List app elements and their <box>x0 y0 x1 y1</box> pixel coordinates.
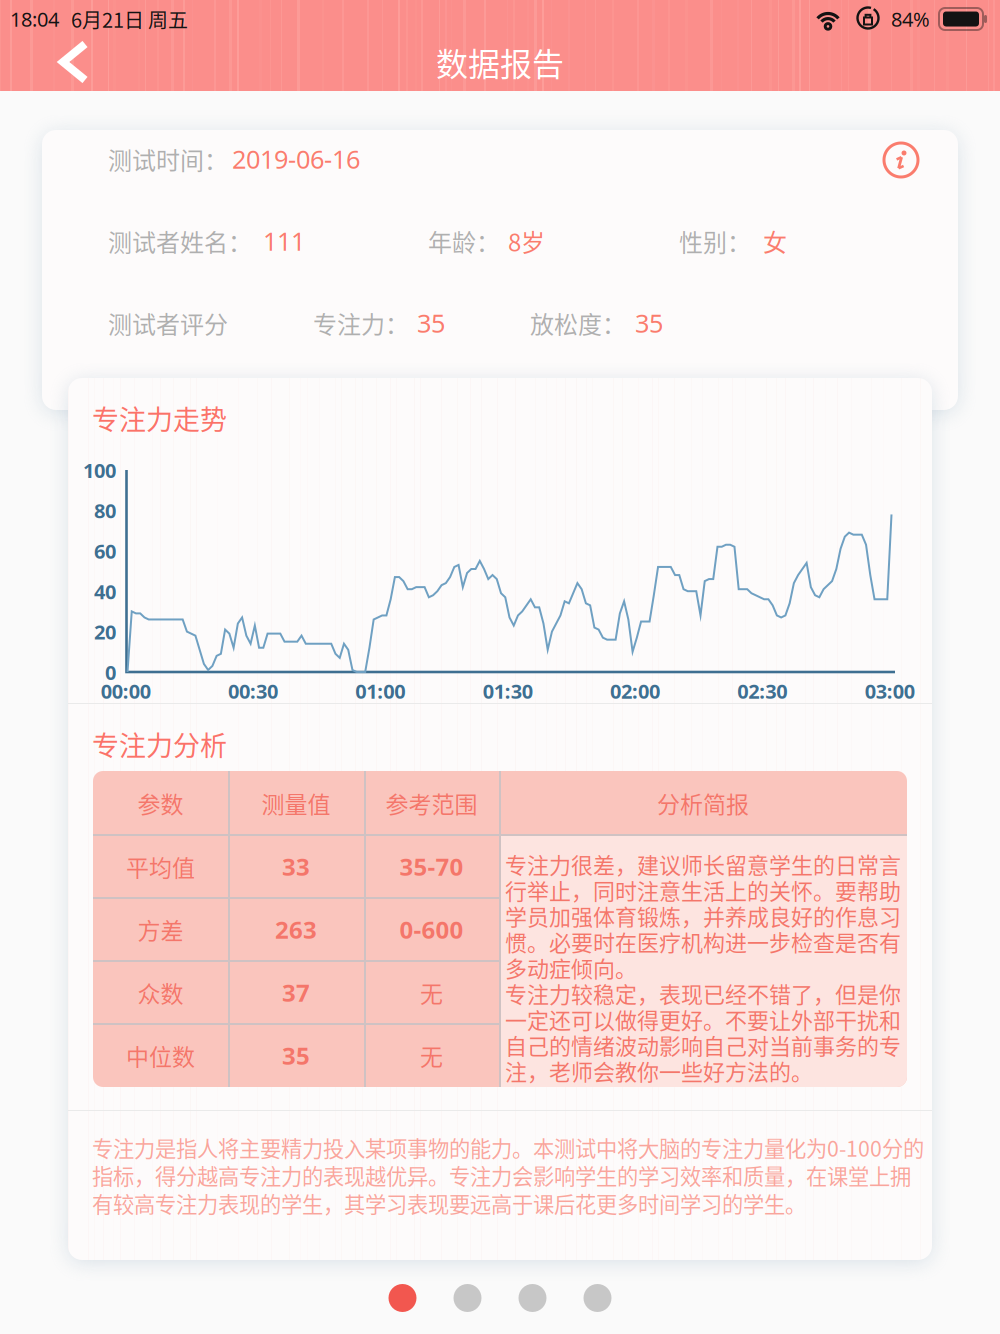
staticText: 18:04 <box>10 6 59 32</box>
staticText: 84% <box>891 6 930 32</box>
staticText: 60 <box>94 538 116 564</box>
staticText: 女 <box>763 224 787 258</box>
staticText: 35 <box>282 1040 310 1071</box>
staticText: 80 <box>94 497 116 524</box>
staticText: 02:30 <box>737 678 787 704</box>
staticText: 35-70 <box>399 851 463 882</box>
staticText: 众数 <box>137 976 183 1009</box>
staticText: 00:00 <box>101 678 151 704</box>
staticText: 无 <box>420 1039 443 1072</box>
staticText: 40 <box>94 578 116 605</box>
staticText: 20 <box>94 618 116 645</box>
staticText: 0-600 <box>399 914 463 945</box>
staticText: 专注力是指人将主要精力投入某项事物的能力。本测试中将大脑的专注力量化为0-100… <box>92 1132 924 1218</box>
button[interactable]: Back <box>0 32 116 92</box>
staticText: 01:30 <box>483 678 533 704</box>
staticText: 100 <box>83 457 116 483</box>
staticText: 测试者评分 <box>108 306 228 340</box>
staticText: 0 <box>105 659 116 685</box>
staticText: 平均值 <box>126 850 195 883</box>
staticText: 263 <box>275 914 317 945</box>
staticText: 测试者姓名： <box>108 224 252 258</box>
staticText: 专注力很差，建议师长留意学生的日常言行举止，同时注意生活上的关怀。要帮助学员加强… <box>505 848 901 1087</box>
staticText: 35 <box>417 306 445 340</box>
staticText: 性别： <box>679 224 751 258</box>
staticText: 参考范围 <box>385 786 477 820</box>
staticText: 03:00 <box>865 678 915 704</box>
staticText: 33 <box>282 851 310 882</box>
staticText: 专注力走势 <box>92 398 227 438</box>
staticText: 00:30 <box>228 678 278 704</box>
staticText: 02:00 <box>610 678 660 704</box>
staticText: 6月21日 周五 <box>59 4 188 33</box>
staticText: 分析简报 <box>657 786 749 820</box>
staticText: 111 <box>263 224 305 258</box>
staticText: 年龄： <box>428 224 500 258</box>
staticText: 37 <box>282 977 310 1008</box>
button[interactable]: More info <box>884 143 918 177</box>
staticText: 专注力分析 <box>92 724 227 764</box>
staticText: 数据报告 <box>436 39 564 85</box>
staticText: 35 <box>635 306 663 340</box>
staticText: 测量值 <box>261 786 330 820</box>
staticText: 测试时间： <box>108 142 228 176</box>
staticText: 专注力： <box>313 306 409 340</box>
staticText: 参数 <box>137 786 183 820</box>
staticText: 方差 <box>137 913 183 946</box>
staticText: 8岁 <box>508 224 545 258</box>
staticText: 01:00 <box>355 678 405 704</box>
staticText: 无 <box>420 976 443 1009</box>
staticText: 放松度： <box>530 306 626 340</box>
staticText: 中位数 <box>126 1039 195 1072</box>
staticText: 2019-06-16 <box>232 142 360 176</box>
